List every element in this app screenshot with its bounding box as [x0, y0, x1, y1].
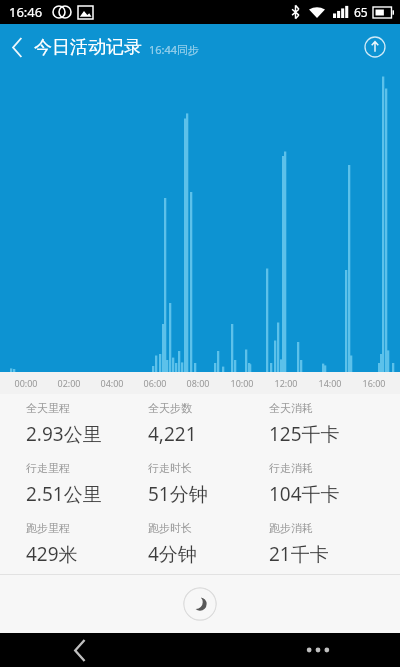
button[interactable]: 全天步数	[148, 401, 269, 447]
staticText: 21千卡	[269, 541, 329, 567]
staticText: 00:00	[14, 377, 38, 389]
button[interactable]: 跑步里程	[26, 521, 148, 567]
staticText: 跑步时长	[148, 521, 192, 535]
staticText: 2.93公里	[26, 421, 102, 447]
staticText: 跑步里程	[26, 521, 70, 535]
staticText: 全天消耗	[269, 401, 313, 415]
staticText: 429米	[26, 541, 78, 567]
staticText: 12:00	[274, 377, 298, 389]
button[interactable]: Back	[0, 24, 34, 70]
staticText: 04:00	[100, 377, 124, 389]
staticText: 16:00	[362, 377, 386, 389]
staticText: 14:00	[318, 377, 342, 389]
button[interactable]: 跑步消耗	[269, 521, 390, 567]
staticText: 10:00	[230, 377, 254, 389]
button[interactable]: 跑步时长	[148, 521, 269, 567]
button[interactable]: 全天消耗	[269, 401, 390, 447]
staticText: 125千卡	[269, 421, 340, 447]
staticText: 51分钟	[148, 481, 208, 507]
button[interactable]: Share	[358, 30, 392, 64]
staticText: 08:00	[186, 377, 210, 389]
staticText: 02:00	[57, 377, 81, 389]
staticText: 行走里程	[26, 461, 70, 475]
staticText: 全天里程	[26, 401, 70, 415]
button[interactable]: More options	[298, 633, 338, 667]
staticText: 104千卡	[269, 481, 340, 507]
staticText: 06:00	[143, 377, 167, 389]
button[interactable]: 全天里程	[26, 401, 148, 447]
staticText: 65	[354, 4, 368, 20]
staticText: 4分钟	[148, 541, 197, 567]
staticText: 今日活动记录	[34, 36, 142, 59]
button[interactable]: 行走时长	[148, 461, 269, 507]
staticText: 行走时长	[148, 461, 192, 475]
button[interactable]: 行走里程	[26, 461, 148, 507]
staticText: 行走消耗	[269, 461, 313, 475]
staticText: 跑步消耗	[269, 521, 313, 535]
staticText: 16:46	[9, 3, 43, 21]
staticText: 2.51公里	[26, 481, 102, 507]
button[interactable]: Back	[60, 633, 100, 667]
staticText: 4,221	[148, 421, 197, 447]
staticText: 16:44同步	[149, 42, 200, 57]
button[interactable]: Sleep	[183, 587, 217, 621]
button[interactable]: 行走消耗	[269, 461, 390, 507]
staticText: 全天步数	[148, 401, 192, 415]
